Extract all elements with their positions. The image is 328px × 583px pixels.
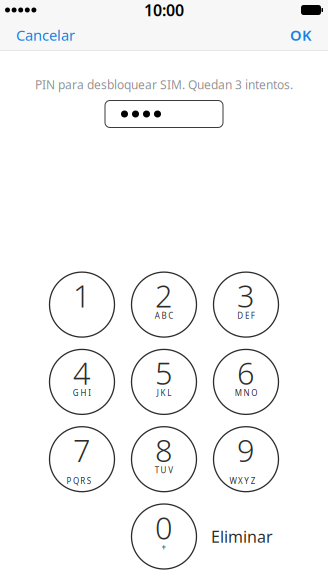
staticText: 7 <box>73 430 91 470</box>
button[interactable]: 4 <box>49 349 114 414</box>
staticText: 1 <box>73 275 91 316</box>
staticText: Eliminar <box>211 526 273 547</box>
staticText: 2 <box>155 275 173 316</box>
staticText: + <box>158 542 170 553</box>
staticText: TUV <box>151 465 177 475</box>
staticText: PIN para desbloquear SIM. Quedan 3 inten… <box>35 76 293 92</box>
staticText: 6 <box>237 352 255 393</box>
staticText: 3 <box>237 275 255 316</box>
staticText: 9 <box>237 430 255 470</box>
staticText: 8 <box>155 430 173 470</box>
button[interactable]: OK <box>273 20 328 50</box>
button[interactable]: 3 <box>213 272 278 337</box>
button[interactable]: Eliminar <box>211 504 281 569</box>
button[interactable]: 6 <box>213 349 278 414</box>
staticText: 4 <box>73 352 91 393</box>
staticText: 5 <box>155 352 173 393</box>
staticText: DEF <box>233 310 259 321</box>
button[interactable]: Cancelar <box>0 20 91 50</box>
button[interactable]: 0 <box>131 504 196 569</box>
button[interactable]: 8 <box>131 427 196 492</box>
staticText: ABC <box>151 310 177 321</box>
staticText: GHI <box>69 388 95 398</box>
staticText: Cancelar <box>16 25 75 45</box>
staticText: MNO <box>231 388 261 398</box>
staticText: OK <box>290 25 311 45</box>
button[interactable]: 5 <box>131 349 196 414</box>
button[interactable]: 2 <box>131 272 196 337</box>
button[interactable]: 9 <box>213 427 278 492</box>
button[interactable]: 1 <box>49 272 114 337</box>
button[interactable]: 7 <box>49 427 114 492</box>
staticText: 0 <box>155 507 173 548</box>
staticText: JKL <box>153 388 175 398</box>
staticText: 10:00 <box>144 0 184 21</box>
